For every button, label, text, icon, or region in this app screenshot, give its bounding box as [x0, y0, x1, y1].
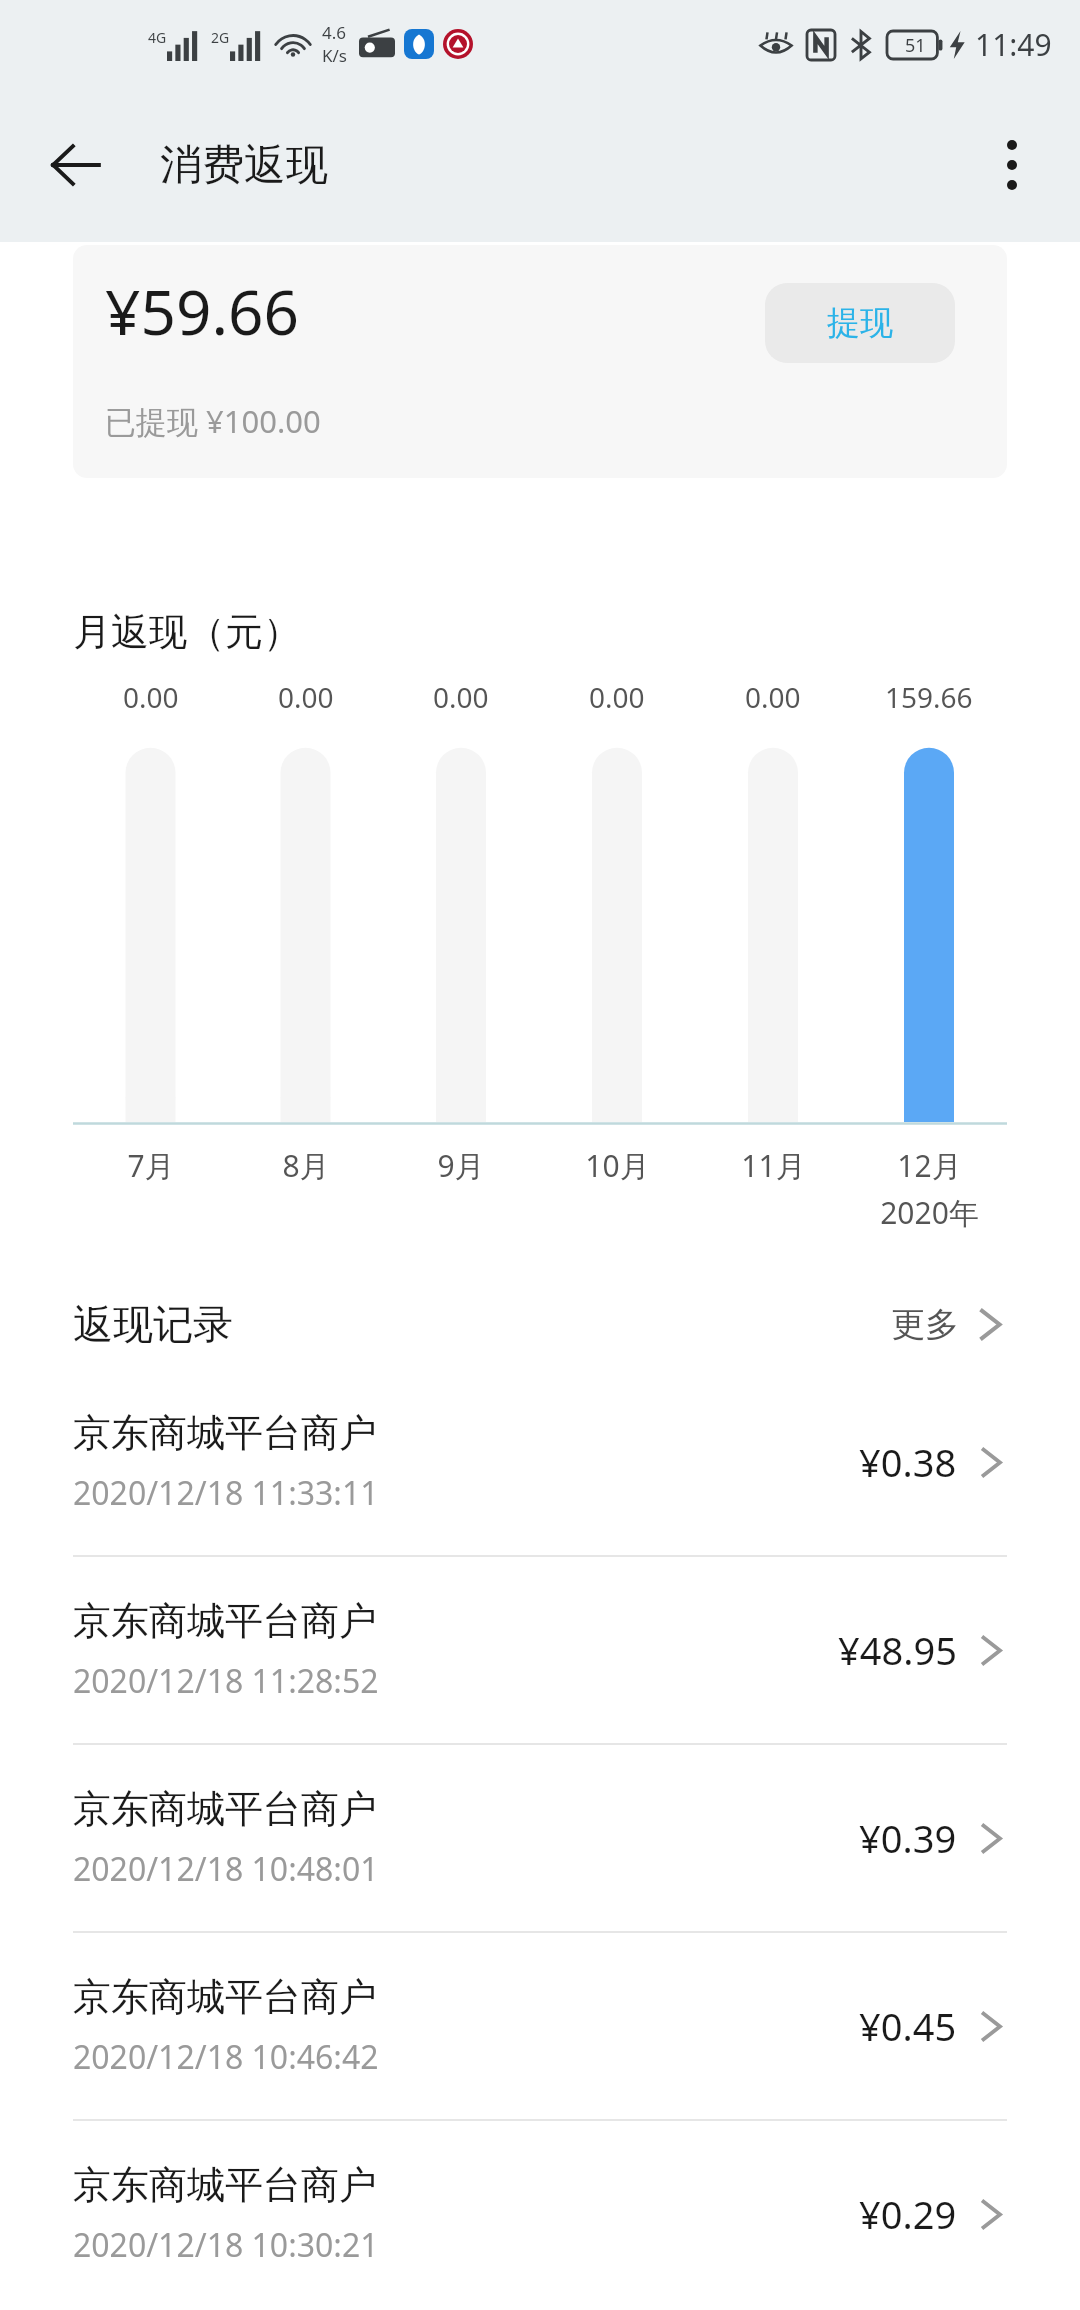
staticText: ¥0.39: [859, 1812, 957, 1864]
staticText: 2020/12/18 11:28:52: [73, 1659, 379, 1703]
staticText: 0.00: [433, 678, 489, 716]
button[interactable]: 京东商城平台商户: [0, 1557, 1080, 1743]
staticText: 2020/12/18 10:48:01: [73, 1847, 379, 1891]
staticText: 10月: [585, 1145, 650, 1186]
button[interactable]: 京东商城平台商户: [0, 1933, 1080, 2119]
staticText: ¥59.66: [105, 269, 299, 353]
staticText: 提现: [827, 302, 893, 344]
button[interactable]: 提现: [765, 283, 955, 363]
button[interactable]: 更多: [891, 1303, 1007, 1346]
staticText: 京东商城平台商户: [73, 1597, 377, 1645]
staticText: 京东商城平台商户: [73, 1785, 377, 1833]
staticText: 11月: [741, 1145, 806, 1186]
staticText: 更多: [891, 1303, 959, 1346]
staticText: 0.00: [123, 678, 179, 716]
staticText: 51: [905, 33, 926, 58]
staticText: 月返现（元）: [73, 608, 301, 656]
staticText: 2020/12/18 11:33:11: [73, 1471, 379, 1515]
staticText: 返现记录: [73, 1299, 233, 1349]
staticText: 京东商城平台商户: [73, 1409, 377, 1457]
staticText: 0.00: [278, 678, 334, 716]
staticText: 0.00: [589, 678, 645, 716]
staticText: ¥0.29: [859, 2188, 957, 2240]
staticText: 2020/12/18 10:30:21: [73, 2223, 379, 2267]
button[interactable]: More options: [964, 117, 1060, 213]
staticText: 已提现 ¥100.00: [105, 400, 321, 442]
staticText: 9月: [437, 1145, 485, 1186]
staticText: 4.6: [322, 21, 347, 44]
staticText: 11:49: [975, 24, 1052, 65]
button[interactable]: 京东商城平台商户: [0, 2121, 1080, 2307]
staticText: 京东商城平台商户: [73, 1973, 377, 2021]
staticText: 8月: [282, 1145, 330, 1186]
staticText: ¥0.45: [859, 2000, 957, 2052]
staticText: 12月: [897, 1145, 962, 1186]
staticText: ¥48.95: [838, 1624, 957, 1676]
staticText: ¥0.38: [859, 1436, 957, 1488]
staticText: 2G: [211, 28, 230, 47]
staticText: 0.00: [745, 678, 801, 716]
button[interactable]: 京东商城平台商户: [0, 1369, 1080, 1555]
staticText: 159.66: [885, 678, 973, 716]
staticText: K/s: [322, 44, 347, 67]
button[interactable]: 京东商城平台商户: [0, 1745, 1080, 1931]
button[interactable]: Back: [28, 117, 124, 213]
staticText: 4G: [148, 28, 167, 47]
staticText: 京东商城平台商户: [73, 2161, 377, 2209]
staticText: 7月: [127, 1145, 175, 1186]
staticText: 2020年: [880, 1192, 979, 1233]
staticText: 2020/12/18 10:46:42: [73, 2035, 379, 2079]
staticText: 消费返现: [160, 139, 328, 192]
